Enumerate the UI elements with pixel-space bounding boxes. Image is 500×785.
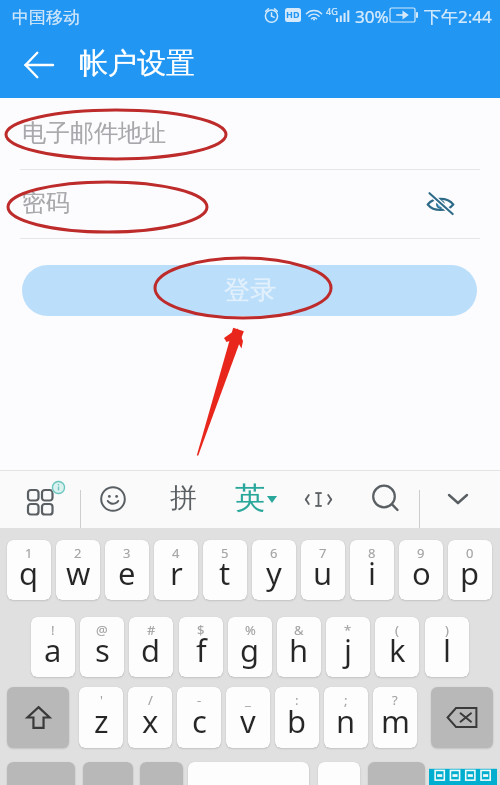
staticText: 电子邮件地址: [22, 118, 166, 148]
staticText: 9: [417, 544, 425, 562]
button[interactable]: -: [177, 687, 221, 748]
staticText: ): [445, 621, 449, 639]
button[interactable]: 3: [105, 540, 149, 600]
button[interactable]: !: [31, 617, 75, 677]
staticText: ;: [344, 691, 348, 709]
button[interactable]: 0: [448, 540, 492, 600]
button[interactable]: 9: [399, 540, 443, 600]
staticText: 6: [270, 544, 278, 562]
button[interactable]: 2: [56, 540, 100, 600]
staticText: y: [266, 552, 282, 594]
staticText: 8: [368, 544, 376, 562]
staticText: j: [344, 629, 352, 671]
button[interactable]: @: [80, 617, 124, 677]
staticText: !: [51, 621, 55, 639]
button[interactable]: Keyboard tool: [298, 479, 338, 519]
button[interactable]: 8: [350, 540, 394, 600]
button[interactable]: &: [277, 617, 321, 677]
staticText: 2: [74, 544, 82, 562]
staticText: 5: [221, 544, 229, 562]
staticText: 0: [466, 544, 474, 562]
staticText: b: [287, 700, 307, 742]
button[interactable]: Keyboard tool: [366, 479, 406, 519]
staticText: 登录: [224, 274, 276, 307]
staticText: 4G: [326, 5, 338, 17]
button[interactable]: 4: [154, 540, 198, 600]
staticText: %: [245, 621, 256, 639]
button[interactable]: Symbols: [7, 762, 75, 785]
staticText: 拼: [170, 481, 197, 515]
button[interactable]: 登录: [22, 265, 477, 316]
staticText: *: [344, 621, 352, 639]
staticText: d: [141, 629, 161, 671]
staticText: z: [94, 700, 109, 742]
button[interactable]: 5: [203, 540, 247, 600]
staticText: r: [170, 552, 183, 594]
staticText: a: [44, 629, 62, 671]
button[interactable]: Keyboard tool: [93, 479, 133, 519]
staticText: u: [313, 552, 333, 594]
button[interactable]: Shift: [7, 687, 69, 748]
button[interactable]: Comma: [83, 762, 133, 785]
staticText: #: [147, 621, 156, 639]
button[interactable]: %: [228, 617, 272, 677]
staticText: 3: [123, 544, 131, 562]
button[interactable]: :: [275, 687, 319, 748]
staticText: 密码: [22, 188, 70, 218]
button[interactable]: _: [226, 687, 270, 748]
staticText: h: [289, 629, 309, 671]
button[interactable]: 7: [301, 540, 345, 600]
staticText: 下午2:44: [424, 5, 492, 28]
button[interactable]: Enter: [368, 762, 425, 785]
staticText: ': [100, 691, 103, 709]
staticText: c: [192, 700, 207, 742]
staticText: 4: [172, 544, 180, 562]
staticText: 30%: [355, 5, 389, 28]
button[interactable]: ?: [373, 687, 417, 748]
button[interactable]: ': [79, 687, 123, 748]
staticText: v: [240, 700, 256, 742]
staticText: -: [197, 691, 202, 709]
staticText: :: [295, 691, 299, 709]
button[interactable]: Back: [20, 46, 57, 83]
staticText: q: [19, 552, 39, 594]
staticText: $: [197, 621, 205, 639]
button[interactable]: ): [425, 617, 469, 677]
staticText: e: [118, 552, 136, 594]
staticText: @: [96, 621, 108, 639]
staticText: t: [219, 552, 231, 594]
button[interactable]: Period: [318, 762, 360, 785]
button[interactable]: Keyboard apps: [22, 477, 68, 521]
staticText: s: [95, 629, 110, 671]
button[interactable]: 1: [7, 540, 51, 600]
staticText: m: [381, 700, 410, 742]
button[interactable]: 密码: [0, 170, 500, 238]
staticText: 帐户设置: [79, 45, 195, 82]
button[interactable]: 电子邮件地址: [0, 98, 500, 169]
staticText: 1: [25, 544, 33, 562]
button[interactable]: $: [179, 617, 223, 677]
staticText: l: [443, 629, 451, 671]
button[interactable]: Show password: [422, 188, 458, 220]
button[interactable]: 英: [231, 479, 281, 519]
button[interactable]: /: [128, 687, 172, 748]
staticText: &: [294, 621, 304, 639]
staticText: k: [389, 629, 406, 671]
staticText: ?: [392, 691, 398, 709]
button[interactable]: Backspace: [431, 687, 493, 748]
staticText: o: [412, 552, 431, 594]
button[interactable]: 6: [252, 540, 296, 600]
staticText: f: [196, 629, 207, 671]
staticText: i: [368, 552, 376, 594]
staticText: x: [142, 700, 159, 742]
staticText: HD: [286, 8, 300, 20]
button[interactable]: Language: [140, 762, 183, 785]
button[interactable]: ;: [324, 687, 368, 748]
button[interactable]: #: [129, 617, 173, 677]
staticText: (: [395, 621, 399, 639]
button[interactable]: *: [326, 617, 370, 677]
button[interactable]: Keyboard tool: [438, 479, 478, 519]
button[interactable]: (: [375, 617, 419, 677]
button[interactable]: 拼: [160, 479, 206, 519]
